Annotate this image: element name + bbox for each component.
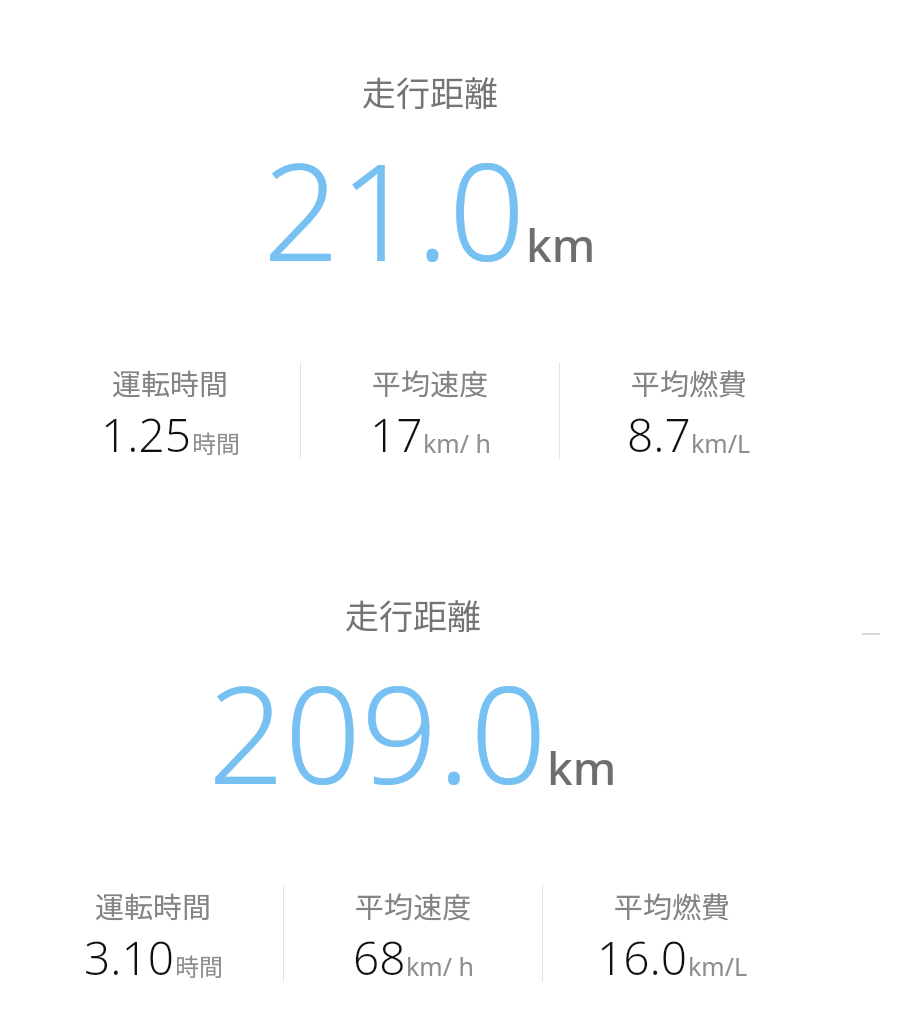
staticText: km: [547, 736, 617, 799]
button[interactable]: 平均燃費: [543, 872, 801, 989]
staticText: 8.7: [627, 403, 691, 466]
staticText: 運転時間: [112, 361, 229, 403]
button[interactable]: 運転時間: [41, 349, 300, 466]
staticText: 走行距離: [362, 67, 498, 116]
staticText: 時間: [192, 425, 240, 460]
staticText: km: [526, 213, 596, 276]
button[interactable]: 平均速度: [301, 349, 559, 466]
staticText: 17: [370, 403, 423, 466]
staticText: 平均燃費: [614, 884, 731, 926]
staticText: 21.0: [263, 118, 526, 301]
staticText: km/ h: [406, 949, 474, 983]
staticText: km/L: [688, 949, 748, 983]
staticText: 運転時間: [95, 884, 212, 926]
staticText: 平均速度: [372, 361, 489, 403]
staticText: 走行距離: [345, 590, 481, 639]
staticText: 68: [353, 926, 406, 989]
button[interactable]: 運転時間: [24, 872, 283, 989]
button[interactable]: 平均速度: [284, 872, 542, 989]
staticText: 1.25: [101, 403, 192, 466]
button[interactable]: 平均燃費: [560, 349, 818, 466]
staticText: km/L: [691, 426, 751, 460]
staticText: 3.10: [84, 926, 175, 989]
button[interactable]: 走行距離: [24, 590, 801, 980]
staticText: km/ h: [423, 426, 491, 460]
button[interactable]: 走行距離: [41, 67, 818, 457]
staticText: 平均速度: [355, 884, 472, 926]
staticText: 16.0: [597, 926, 688, 989]
staticText: 時間: [175, 948, 223, 983]
staticText: 209.0: [208, 641, 547, 824]
staticText: 平均燃費: [631, 361, 748, 403]
